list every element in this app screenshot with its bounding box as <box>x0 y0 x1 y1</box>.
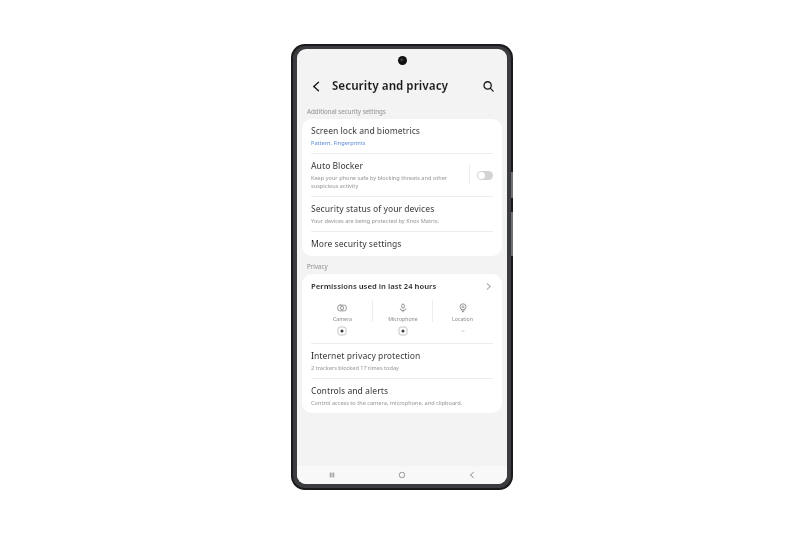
button[interactable]: Recents <box>297 466 367 484</box>
button[interactable]: Home <box>367 466 437 484</box>
button[interactable]: Camera <box>312 300 372 335</box>
staticText: Screen lock and biometrics <box>311 125 421 137</box>
button[interactable]: Screen lock and biometrics <box>302 119 502 153</box>
staticText: Security status of your devices <box>311 203 435 215</box>
staticText: Your devices are being protected by Knox… <box>311 217 440 225</box>
staticText: Internet privacy protection <box>311 350 421 362</box>
button[interactable]: Controls and alerts <box>302 379 502 413</box>
button[interactable]: Location <box>433 300 492 335</box>
button[interactable]: Microphone <box>373 300 432 335</box>
button[interactable]: Search <box>479 77 497 95</box>
staticText: Microphone <box>388 315 418 322</box>
button[interactable]: Back <box>307 77 325 95</box>
staticText: Keep your phone safe by blocking threats… <box>311 174 461 190</box>
staticText: Location <box>452 315 473 322</box>
staticText: Controls and alerts <box>311 385 389 397</box>
staticText: Privacy <box>307 262 328 270</box>
staticText: Camera <box>333 315 352 322</box>
button[interactable]: Auto Blocker toggle <box>477 171 493 180</box>
staticText: Auto Blocker <box>311 160 364 172</box>
staticText: 2 trackers blocked 17 times today <box>311 364 399 372</box>
button[interactable]: Back <box>437 466 507 484</box>
staticText: Permissions used in last 24 hours <box>311 281 437 291</box>
staticText: Security and privacy <box>332 78 449 94</box>
staticText: More security settings <box>311 238 402 250</box>
staticText: Control access to the camera, microphone… <box>311 399 463 407</box>
staticText: Pattern, Fingerprints <box>311 139 366 147</box>
staticText: Additional security settings <box>307 107 386 115</box>
button[interactable]: More security settings <box>302 232 502 256</box>
button[interactable]: Permissions used in last 24 hours <box>302 274 502 298</box>
button[interactable]: Security status of your devices <box>302 197 502 231</box>
button[interactable]: Internet privacy protection <box>302 344 502 378</box>
button[interactable]: Auto Blocker <box>302 154 502 196</box>
